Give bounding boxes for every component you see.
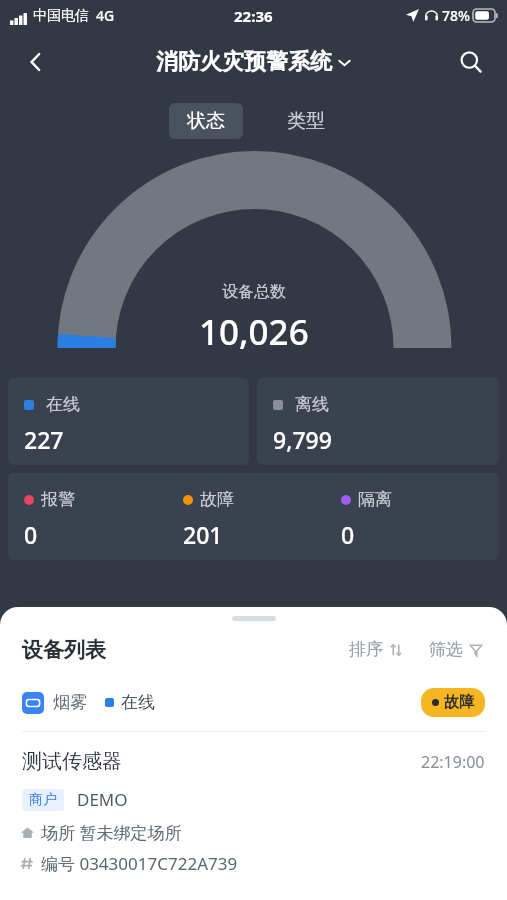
- staticText: 中国电信: [33, 7, 89, 25]
- button[interactable]: Search: [449, 40, 493, 84]
- staticText: 22:36: [234, 6, 273, 26]
- staticText: 故障: [200, 489, 234, 510]
- button[interactable]: 消防火灾预警系统: [156, 48, 352, 76]
- staticText: 设备总数: [222, 282, 286, 302]
- button[interactable]: 故障: [421, 688, 485, 717]
- staticText: 9,799: [273, 424, 332, 455]
- button[interactable]: 隔离: [341, 489, 499, 550]
- staticText: 报警: [41, 489, 75, 510]
- staticText: 78%: [442, 6, 470, 25]
- staticText: 在线: [121, 692, 155, 713]
- staticText: 隔离: [358, 489, 392, 510]
- staticText: 离线: [295, 394, 329, 415]
- staticText: 筛选: [429, 639, 463, 660]
- staticText: 消防火灾预警系统: [156, 48, 332, 76]
- staticText: 22:19:00: [421, 751, 485, 773]
- staticText: 设备列表: [22, 637, 106, 663]
- staticText: 排序: [349, 639, 383, 660]
- staticText: 在线: [46, 394, 80, 415]
- button[interactable]: 排序: [343, 633, 409, 666]
- staticText: DEMO: [77, 788, 128, 811]
- staticText: 227: [24, 424, 64, 455]
- button[interactable]: 状态: [169, 103, 243, 139]
- staticText: 201: [183, 519, 223, 550]
- staticText: 状态: [187, 109, 225, 133]
- staticText: 0: [341, 519, 355, 550]
- button[interactable]: Back: [14, 40, 58, 84]
- staticText: 10,026: [199, 308, 309, 356]
- button[interactable]: 离线: [257, 378, 499, 465]
- button[interactable]: 类型: [273, 103, 339, 139]
- button[interactable]: 烟雾: [0, 688, 507, 875]
- staticText: 编号 03430017C722A739: [41, 852, 238, 875]
- staticText: 0: [24, 519, 38, 550]
- button[interactable]: 故障: [183, 489, 341, 550]
- button[interactable]: 报警: [24, 489, 183, 550]
- staticText: 类型: [287, 109, 325, 133]
- staticText: 烟雾: [53, 692, 87, 713]
- staticText: 场所 暂未绑定场所: [41, 821, 182, 844]
- staticText: 故障: [444, 693, 474, 712]
- staticText: 测试传感器: [22, 749, 122, 774]
- button[interactable]: 在线: [8, 378, 249, 465]
- staticText: 商户: [29, 791, 57, 809]
- staticText: 4G: [96, 6, 115, 25]
- button[interactable]: 筛选: [423, 633, 489, 666]
